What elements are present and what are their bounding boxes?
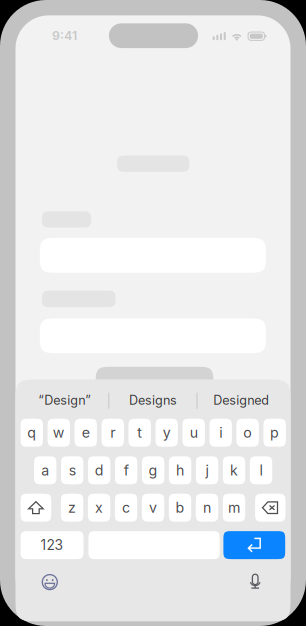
staticText: r bbox=[110, 424, 115, 441]
button[interactable]: b bbox=[169, 494, 191, 522]
button[interactable]: x bbox=[88, 494, 110, 522]
button[interactable]: y bbox=[155, 419, 178, 447]
button[interactable]: r bbox=[101, 419, 124, 447]
button[interactable]: e bbox=[75, 419, 97, 447]
staticText: Designed bbox=[213, 393, 269, 408]
button[interactable]: j bbox=[196, 456, 218, 484]
button[interactable]: t bbox=[128, 419, 151, 447]
button[interactable]: h bbox=[169, 456, 191, 484]
staticText: 123 bbox=[40, 537, 63, 553]
staticText: x bbox=[95, 499, 103, 516]
staticText: a bbox=[41, 462, 49, 479]
button[interactable]: g bbox=[142, 456, 164, 484]
staticText: 9:41 bbox=[52, 28, 77, 43]
staticText: m bbox=[228, 499, 240, 516]
button[interactable]: v bbox=[142, 494, 164, 522]
staticText: g bbox=[149, 462, 158, 479]
staticText: o bbox=[243, 424, 252, 441]
button[interactable]: a bbox=[34, 456, 56, 484]
staticText: “Design” bbox=[38, 393, 91, 408]
button[interactable]: u bbox=[182, 419, 205, 447]
button[interactable]: c bbox=[115, 494, 137, 522]
button[interactable]: m bbox=[223, 494, 245, 522]
staticText: j bbox=[206, 462, 209, 479]
staticText: p bbox=[270, 424, 279, 441]
staticText: k bbox=[230, 462, 238, 479]
button[interactable]: i bbox=[209, 419, 232, 447]
button[interactable]: l bbox=[250, 456, 272, 484]
button[interactable]: p bbox=[263, 419, 286, 447]
button[interactable]: “Design” bbox=[21, 385, 109, 415]
staticText: u bbox=[190, 424, 198, 441]
staticText: h bbox=[176, 462, 184, 479]
staticText: b bbox=[175, 499, 184, 516]
button[interactable]: Return bbox=[223, 531, 285, 559]
button[interactable]: n bbox=[196, 494, 218, 522]
button[interactable]: Designed bbox=[197, 385, 285, 415]
button[interactable]: s bbox=[61, 456, 83, 484]
staticText: s bbox=[69, 462, 76, 479]
button[interactable]: q bbox=[21, 419, 43, 447]
button[interactable]: Shift bbox=[21, 494, 51, 522]
staticText: Designs bbox=[129, 393, 177, 408]
staticText: z bbox=[68, 499, 76, 516]
button[interactable]: w bbox=[48, 419, 70, 447]
button[interactable]: Dictate bbox=[247, 573, 263, 590]
button[interactable]: Emoji bbox=[41, 574, 58, 591]
button[interactable]: f bbox=[115, 456, 137, 484]
staticText: t bbox=[137, 424, 142, 441]
button[interactable]: 123 bbox=[21, 531, 83, 559]
button[interactable]: k bbox=[223, 456, 245, 484]
button[interactable]: z bbox=[61, 494, 83, 522]
staticText: i bbox=[219, 424, 222, 441]
staticText: q bbox=[27, 424, 36, 441]
staticText: y bbox=[163, 424, 171, 441]
staticText: w bbox=[53, 424, 65, 441]
button[interactable]: d bbox=[88, 456, 110, 484]
button[interactable]: o bbox=[236, 419, 259, 447]
staticText: l bbox=[259, 462, 262, 479]
button[interactable]: Designs bbox=[109, 385, 197, 415]
button[interactable]: Delete bbox=[255, 494, 285, 522]
staticText: c bbox=[122, 499, 130, 516]
staticText: d bbox=[95, 462, 104, 479]
staticText: v bbox=[149, 499, 157, 516]
staticText: e bbox=[82, 424, 90, 441]
staticText: f bbox=[124, 462, 129, 479]
staticText: n bbox=[203, 499, 211, 516]
